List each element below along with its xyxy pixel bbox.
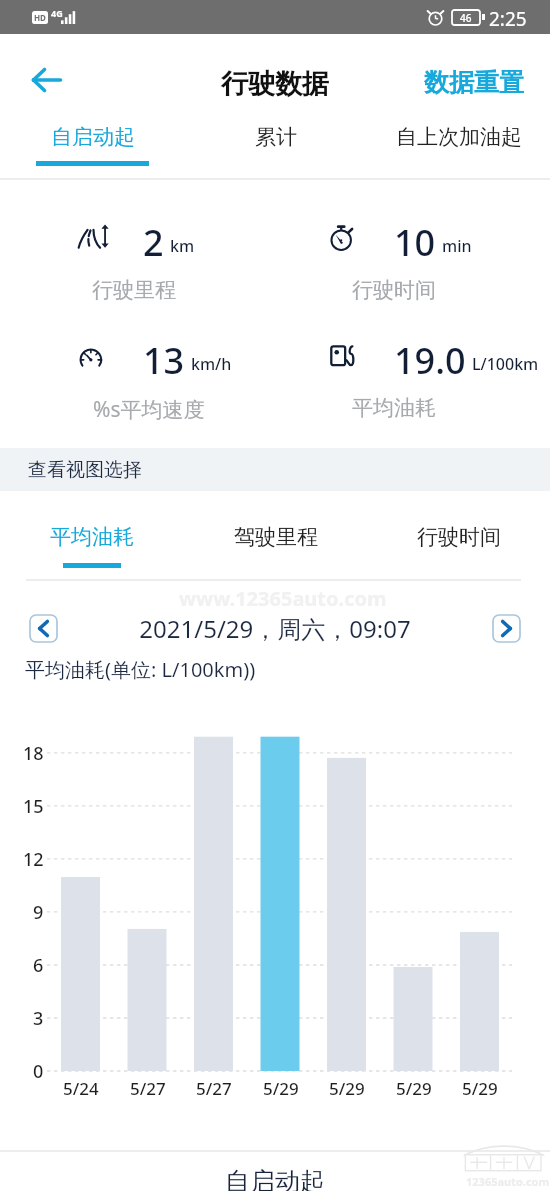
staticText: www.12365auto.com xyxy=(179,585,387,612)
button[interactable]: 数据重置 xyxy=(420,61,528,104)
staticText: 自上次加油起 xyxy=(396,124,522,150)
staticText: 19.0 xyxy=(394,336,466,385)
staticText: 平均油耗 xyxy=(352,395,436,421)
staticText: 9 xyxy=(33,900,44,925)
staticText: 0 xyxy=(33,1059,44,1084)
button[interactable]: 驾驶里程 xyxy=(184,524,367,590)
staticText: 6 xyxy=(33,953,44,978)
staticText: 行驶里程 xyxy=(92,277,176,303)
staticText: 2 xyxy=(143,218,164,267)
staticText: 13 xyxy=(143,336,185,385)
staticText: 查看视图选择 xyxy=(28,458,142,482)
button[interactable]: 行驶时间 xyxy=(367,524,550,590)
staticText: 18 xyxy=(23,741,44,766)
staticText: 5/24 xyxy=(63,1077,99,1100)
staticText: 累计 xyxy=(255,124,297,150)
staticText: 3 xyxy=(33,1006,44,1031)
staticText: 驾驶里程 xyxy=(234,524,318,550)
staticText: HD xyxy=(34,12,46,23)
staticText: 5/29 xyxy=(462,1077,498,1100)
staticText: 行驶时间 xyxy=(352,277,436,303)
staticText: 数据重置 xyxy=(424,67,524,98)
staticText: 自启动起 xyxy=(0,1166,550,1191)
staticText: 行驶时间 xyxy=(417,524,501,550)
staticText: 平均油耗 xyxy=(50,524,134,550)
staticText: 46 xyxy=(460,11,472,25)
staticText: 10 xyxy=(394,218,436,267)
staticText: 5/27 xyxy=(196,1077,232,1100)
staticText: 12365auto.com xyxy=(466,1174,550,1189)
button[interactable]: 平均油耗 xyxy=(0,524,184,590)
staticText: 5/27 xyxy=(130,1077,166,1100)
staticText: 平均油耗(单位: L/100km)) xyxy=(25,656,256,683)
staticText: %s平均速度 xyxy=(93,395,205,424)
button[interactable]: 自启动起 xyxy=(0,124,184,184)
staticText: L/100km xyxy=(472,353,539,375)
staticText: 12 xyxy=(23,847,44,872)
staticText: 2:25 xyxy=(489,6,527,32)
button[interactable]: Previous xyxy=(30,615,57,642)
staticText: 行驶数据 xyxy=(221,67,329,101)
staticText: 5/29 xyxy=(396,1077,432,1100)
staticText: 自启动起 xyxy=(51,124,135,150)
staticText: 15 xyxy=(23,794,44,819)
button[interactable]: Back xyxy=(24,58,68,102)
staticText: 4G xyxy=(51,7,63,19)
staticText: 2021/5/29，周六，09:07 xyxy=(57,612,493,644)
staticText: 5/29 xyxy=(329,1077,365,1100)
staticText: min xyxy=(442,235,472,257)
staticText: km xyxy=(170,235,195,257)
button[interactable]: 自上次加油起 xyxy=(367,124,550,184)
button[interactable]: 累计 xyxy=(184,124,367,184)
staticText: km/h xyxy=(191,353,232,375)
button[interactable]: Next xyxy=(493,615,520,642)
staticText: 5/29 xyxy=(263,1077,299,1100)
